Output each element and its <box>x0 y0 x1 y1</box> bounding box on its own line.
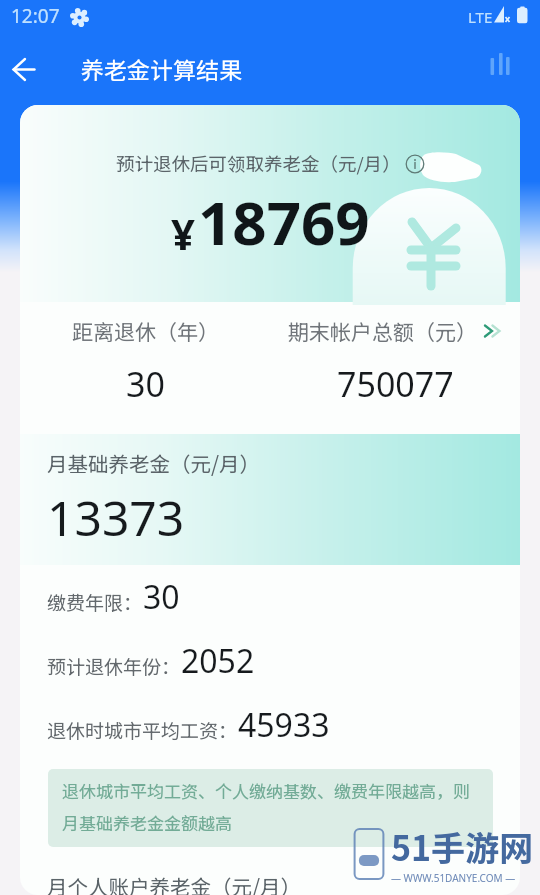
staticText: 51手游网 <box>391 822 534 871</box>
staticText: 预计退休后可领取养老金（元/月） <box>116 150 401 177</box>
staticText: 2052 <box>181 639 255 683</box>
button[interactable]: 返回 <box>2 55 46 99</box>
staticText: ¥ <box>171 205 196 262</box>
staticText: 月基础养老金（元/月） <box>47 448 261 478</box>
staticText: 距离退休（年） <box>72 316 219 346</box>
staticText: 养老金计算结果 <box>81 52 242 85</box>
staticText: 13373 <box>47 485 185 550</box>
staticText: 缴费年限： <box>47 588 143 616</box>
staticText: 30 <box>143 575 180 619</box>
staticText: 45933 <box>238 703 330 747</box>
staticText: 退休时城市平均工资： <box>47 716 238 744</box>
staticText: 期末帐户总额（元） <box>288 316 477 346</box>
staticText: LTE <box>468 7 493 27</box>
staticText: 退休城市平均工资、个人缴纳基数、缴费年限越高，则月基础养老金金额越高 <box>62 778 481 835</box>
staticText: — WWW.51DANYE.COM — <box>391 871 516 885</box>
button[interactable]: 期末帐户总额（元） <box>270 302 520 407</box>
staticText: 30 <box>126 361 165 407</box>
button[interactable]: 距离退休（年） <box>20 302 270 407</box>
staticText: 18769 <box>198 181 370 263</box>
button[interactable]: 统计图表 <box>478 42 522 86</box>
staticText: 12:07 <box>11 3 60 29</box>
staticText: 月个人账户养老金（元/月） <box>47 871 302 895</box>
staticText: 预计退休年份： <box>47 652 181 680</box>
button[interactable]: 说明 <box>405 154 425 174</box>
staticText: 750077 <box>337 361 454 407</box>
